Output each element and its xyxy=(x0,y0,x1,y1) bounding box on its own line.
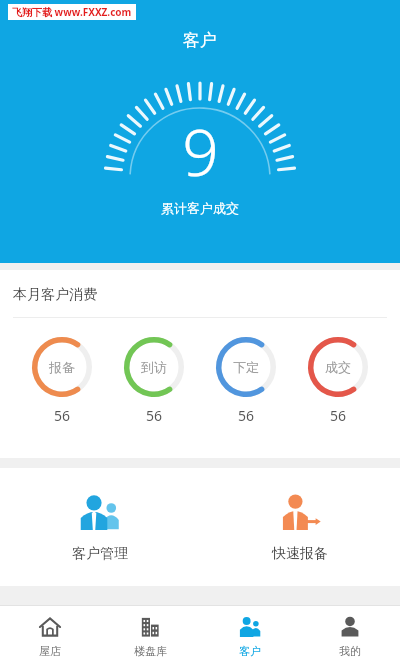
staticText: 客户 xyxy=(239,644,261,658)
button[interactable]: 屋店 xyxy=(0,606,100,667)
staticText: 9 xyxy=(182,108,219,195)
staticText: 下定 xyxy=(233,359,259,375)
button[interactable]: Customer management xyxy=(0,468,200,586)
staticText: 屋店 xyxy=(39,644,61,658)
staticText: 成交 xyxy=(325,359,351,375)
staticText: 客户 xyxy=(183,30,217,51)
staticText: 56 xyxy=(146,406,163,425)
button[interactable]: 成交 xyxy=(308,337,368,425)
staticText: 飞翔下载 www.FXXZ.com xyxy=(12,5,132,19)
button[interactable]: 楼盘库 xyxy=(100,606,200,667)
staticText: 本月客户消费 xyxy=(13,286,97,304)
staticText: 报备 xyxy=(49,359,75,375)
staticText: 56 xyxy=(330,406,347,425)
button[interactable]: 我的 xyxy=(300,606,400,667)
button[interactable]: Quick report xyxy=(200,468,400,586)
button[interactable]: 报备 xyxy=(32,337,92,425)
staticText: 到访 xyxy=(141,359,167,375)
button[interactable]: 到访 xyxy=(124,337,184,425)
staticText: 客户管理 xyxy=(72,545,128,563)
button[interactable]: 客户 xyxy=(200,606,300,667)
button[interactable]: 下定 xyxy=(216,337,276,425)
staticText: 56 xyxy=(238,406,255,425)
staticText: 我的 xyxy=(339,644,361,658)
staticText: 累计客户成交 xyxy=(161,200,239,216)
staticText: 56 xyxy=(54,406,71,425)
staticText: 快速报备 xyxy=(272,545,328,563)
staticText: 楼盘库 xyxy=(134,644,167,658)
